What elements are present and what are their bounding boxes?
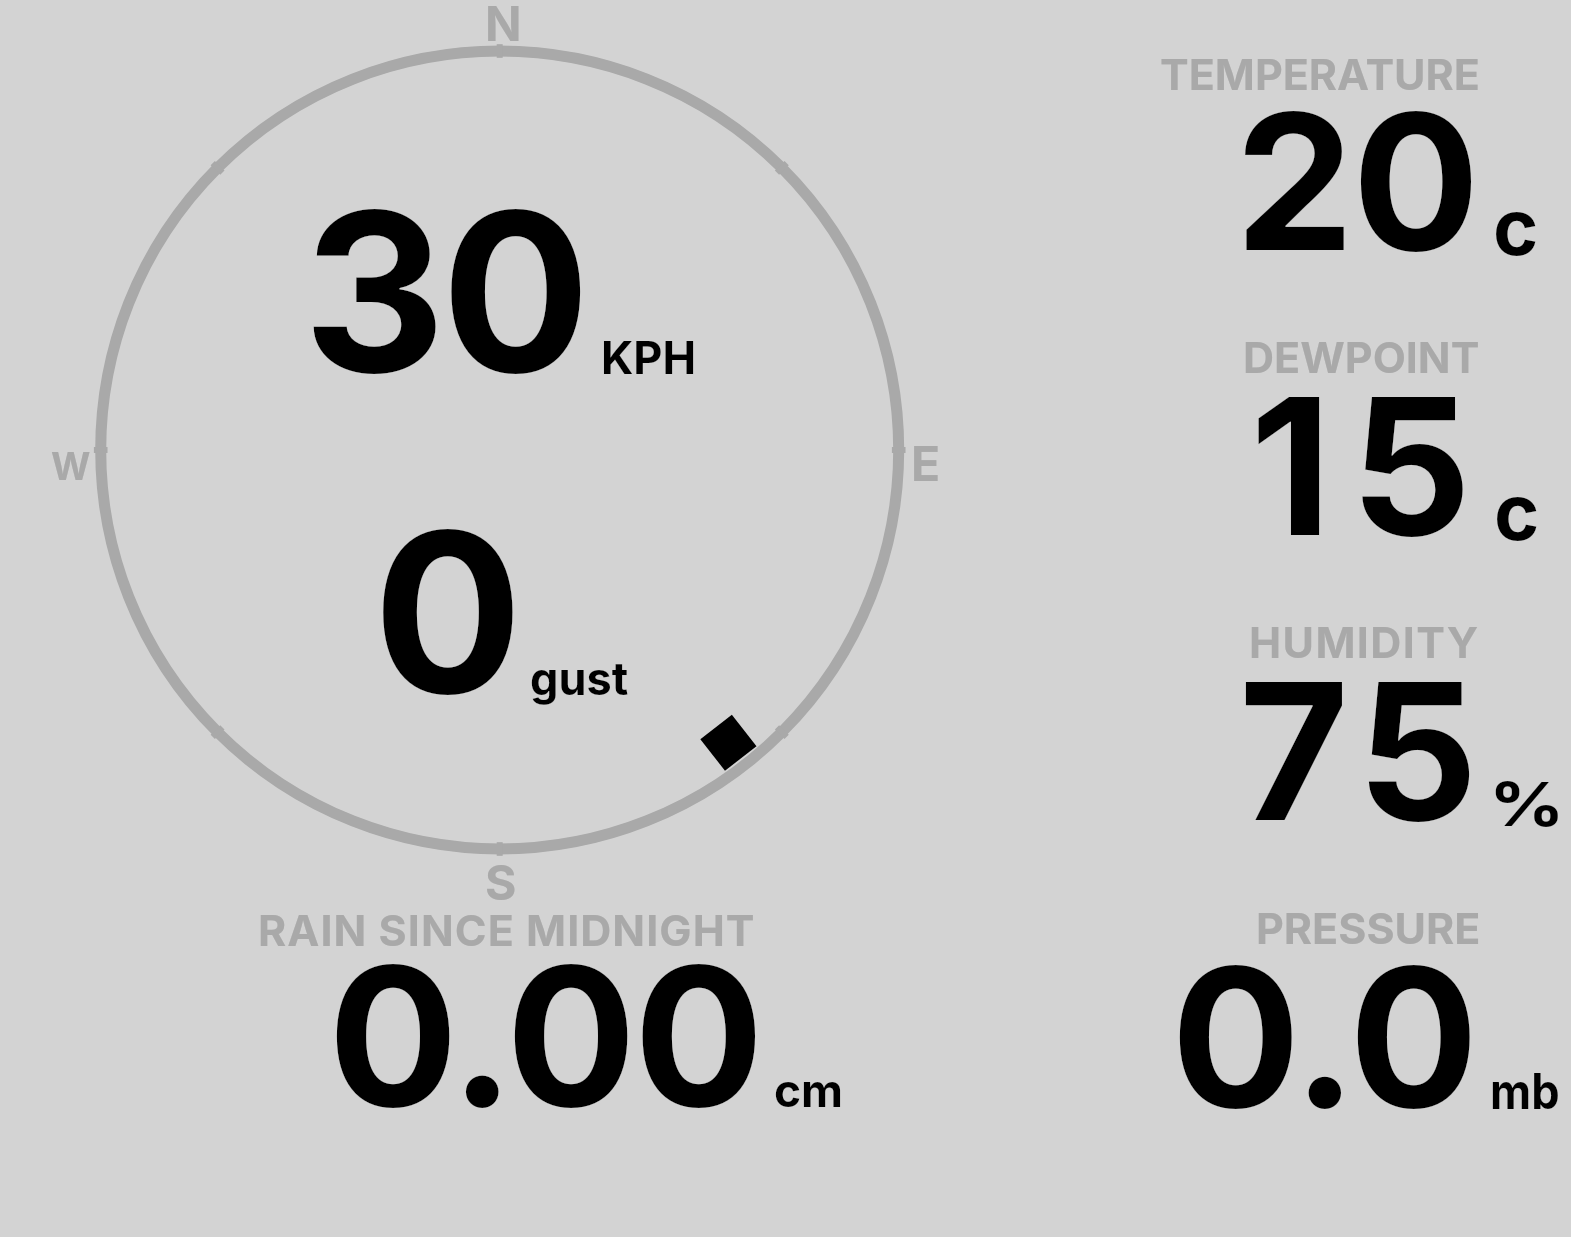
staticText: gust — [530, 651, 629, 705]
button[interactable]: Temperature 20 c — [1040, 10, 1565, 285]
staticText: 75 — [1239, 637, 1488, 866]
button[interactable]: Pressure 0.0 mb — [1040, 870, 1565, 1130]
staticText: mb — [1490, 1062, 1560, 1121]
staticText: PRESSURE — [1256, 902, 1481, 954]
staticText: KPH — [601, 330, 697, 384]
staticText: DEWPOINT — [1243, 331, 1480, 383]
staticText: RAIN SINCE MIDNIGHT — [258, 904, 756, 956]
staticText: S — [485, 853, 517, 911]
staticText: 0.0 — [1171, 921, 1477, 1153]
button[interactable]: Wind 30 KPH, gust 0 — [60, 10, 960, 890]
staticText: 0 — [373, 478, 520, 747]
staticText: % — [1489, 767, 1565, 841]
staticText: 30 — [303, 158, 586, 425]
staticText: HUMIDITY — [1249, 616, 1480, 668]
button[interactable]: Humidity 75 percent — [1040, 580, 1565, 865]
staticText: E — [911, 434, 941, 492]
staticText: c — [1494, 465, 1540, 558]
staticText: cm — [774, 1062, 844, 1118]
staticText: W — [51, 443, 91, 489]
staticText: 15 — [1250, 352, 1491, 581]
staticText: TEMPERATURE — [1160, 48, 1480, 100]
button[interactable]: Dewpoint 15 c — [1040, 290, 1565, 575]
button[interactable]: Rain since midnight 0.00 cm — [230, 895, 870, 1135]
staticText: 0.00 — [328, 919, 762, 1153]
staticText: c — [1493, 180, 1539, 273]
staticText: 20 — [1235, 67, 1478, 296]
staticText: N — [485, 0, 522, 52]
